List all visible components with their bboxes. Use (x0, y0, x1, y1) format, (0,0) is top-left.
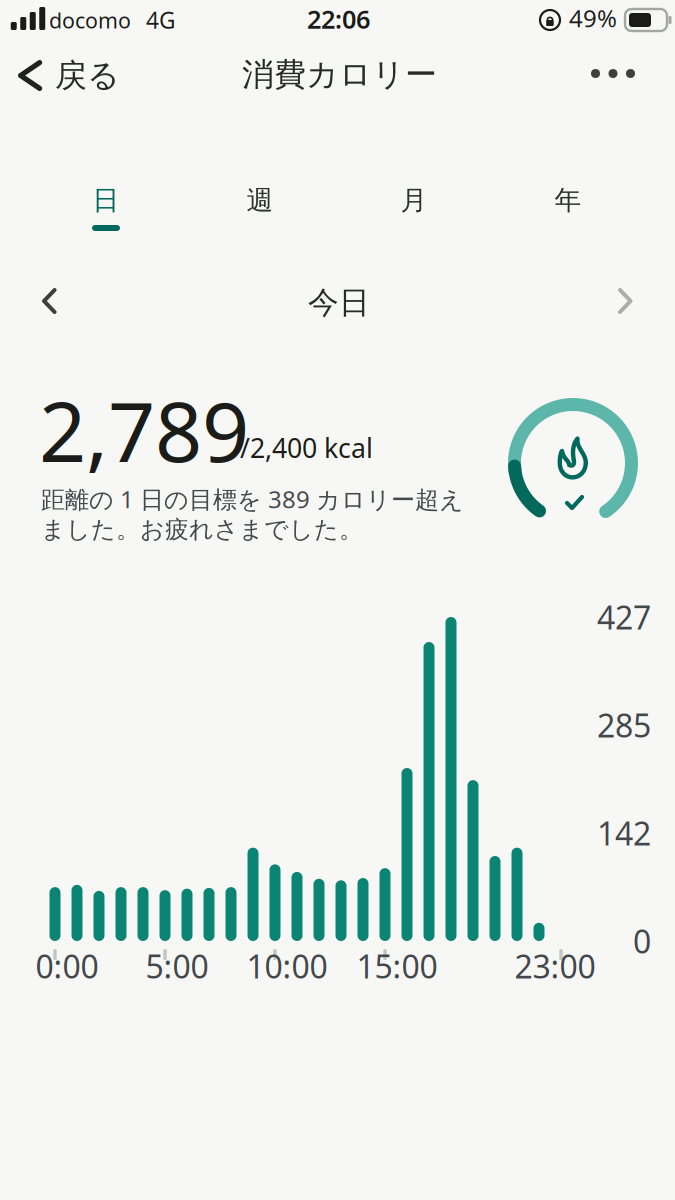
button[interactable]: 戻る (0, 40, 175, 106)
staticText: 10:00 (246, 945, 327, 987)
button[interactable]: 日 (29, 180, 183, 242)
staticText: 22:06 (307, 2, 370, 36)
staticText: 0 (633, 920, 651, 962)
button[interactable]: 前の日 (0, 272, 90, 330)
staticText: 今日 (308, 284, 370, 322)
button[interactable]: 週 (183, 180, 337, 242)
staticText: 49% (569, 2, 617, 34)
staticText: 年 (554, 184, 581, 217)
staticText: 日 (92, 184, 119, 217)
staticText: 23:00 (514, 945, 595, 987)
staticText: 285 (597, 704, 651, 746)
button[interactable]: その他のオプション (565, 40, 661, 106)
staticText: 15:00 (356, 945, 437, 987)
staticText: 5:00 (145, 945, 208, 987)
staticText: 142 (597, 812, 651, 854)
staticText: 427 (597, 596, 651, 638)
staticText: 週 (246, 184, 273, 217)
staticText: 0:00 (35, 945, 98, 987)
staticText: 4G (146, 5, 176, 35)
staticText: 2,789 (39, 375, 249, 485)
button[interactable]: 次の日 (585, 272, 675, 330)
staticText: 消費カロリー (242, 55, 437, 94)
staticText: 距離の 1 日の目標を 389 カロリー超え ました。お疲れさまでした。 (41, 483, 464, 544)
staticText: /2,400 kcal (240, 430, 373, 465)
staticText: docomo (49, 6, 131, 34)
button[interactable]: 月 (337, 180, 491, 242)
button[interactable]: 年 (491, 180, 645, 242)
staticText: 月 (400, 184, 427, 217)
staticText: 戻る (55, 56, 120, 95)
